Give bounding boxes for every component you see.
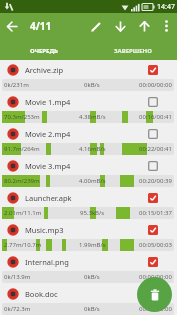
button[interactable] [0, 14, 24, 38]
staticText: 0kB/s [84, 273, 100, 281]
staticText: 00:00/00:00 [139, 81, 172, 89]
staticText: 4.38mB/s [79, 113, 106, 121]
staticText: Movie 3.mp4 [25, 161, 71, 171]
button[interactable]: Movie 1.mp4 [0, 92, 177, 124]
button[interactable]: Movie 2.mp4 [0, 124, 177, 156]
staticText: Music.mp3 [25, 225, 64, 235]
button[interactable] [148, 129, 158, 139]
staticText: 00:00/00:00 [139, 305, 172, 313]
button[interactable]: Music.mp3 [0, 220, 177, 252]
staticText: 80.2m/239m [4, 177, 40, 185]
button[interactable] [148, 65, 158, 75]
staticText: 2.01m/11.1m [4, 209, 42, 217]
staticText: 1.99mB/s [79, 241, 106, 249]
staticText: ЗАВЕРШЕНО [114, 47, 152, 55]
button[interactable] [148, 193, 158, 203]
staticText: 0k/231m [4, 81, 29, 89]
button[interactable] [148, 225, 158, 235]
staticText: 2.77m/10.7m [4, 241, 42, 249]
staticText: 4/11 [30, 19, 52, 33]
staticText: 00:00/00:00 [139, 273, 172, 281]
staticText: 00:05/00:03 [139, 241, 172, 249]
button[interactable] [132, 14, 156, 38]
button[interactable] [108, 14, 132, 38]
staticText: 95.3kB/s [80, 209, 105, 217]
button[interactable] [137, 277, 172, 312]
staticText: 14:47 [157, 2, 175, 12]
staticText: Movie 1.mp4 [25, 97, 71, 107]
staticText: 00:16/00:41 [139, 113, 172, 121]
button[interactable] [148, 161, 158, 171]
button[interactable]: Internal.png [0, 252, 177, 284]
staticText: 00:20/00:39 [139, 177, 172, 185]
staticText: 0kB/s [84, 81, 100, 89]
staticText: Book.doc [25, 289, 58, 299]
button[interactable] [156, 14, 177, 38]
staticText: 4.00mB/s [79, 177, 106, 185]
staticText: Launcher.apk [25, 193, 72, 203]
staticText: 91.7m/264m [4, 145, 40, 153]
staticText: 0k/13.9m [4, 273, 31, 281]
staticText: 0k/72.3m [4, 305, 31, 313]
button[interactable] [148, 97, 158, 107]
button[interactable] [148, 257, 158, 267]
staticText: 4.16mB/s [79, 145, 106, 153]
staticText: Archive.zip [25, 65, 64, 75]
staticText: 70.3m/253m [4, 113, 40, 121]
staticText: Movie 2.mp4 [25, 129, 71, 139]
button[interactable]: Book.doc [0, 284, 177, 315]
button[interactable]: ОЧЕРЕДЬ [0, 38, 88, 60]
staticText: 00:15/01:37 [139, 209, 172, 217]
staticText: 0kB/s [84, 305, 100, 313]
button[interactable]: Movie 3.mp4 [0, 156, 177, 188]
button[interactable] [84, 14, 108, 38]
staticText: Internal.png [25, 257, 69, 267]
button[interactable]: Launcher.apk [0, 188, 177, 220]
staticText: 00:22/00:41 [139, 145, 172, 153]
button[interactable]: Archive.zip [0, 60, 177, 92]
button[interactable]: ЗАВЕРШЕНО [88, 38, 177, 60]
staticText: ОЧЕРЕДЬ [30, 47, 58, 55]
